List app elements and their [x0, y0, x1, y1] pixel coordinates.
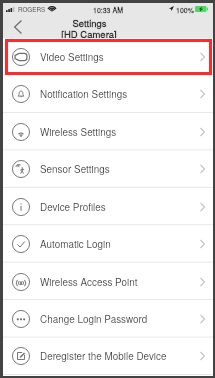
button[interactable]: Change Login Password — [3, 300, 213, 337]
button[interactable]: Automatic Login — [3, 225, 213, 262]
staticText: [HD Camera] — [61, 27, 117, 41]
staticText: Deregister the Mobile Device — [40, 349, 167, 363]
staticText: Device Profiles — [40, 200, 106, 214]
staticText: Automatic Login — [40, 237, 111, 251]
staticText: Wireless Settings — [40, 125, 117, 139]
staticText: 10:33 AM — [93, 5, 123, 15]
button[interactable]: Wireless Settings — [3, 113, 213, 150]
button[interactable]: Wireless Access Point — [3, 263, 213, 300]
staticText: Sensor Settings — [40, 162, 110, 176]
button[interactable]: Notification Settings — [3, 75, 213, 112]
button[interactable]: Video Settings — [3, 38, 213, 75]
button[interactable]: Deregister the Mobile Device — [3, 337, 213, 374]
button[interactable]: Device Profiles — [3, 188, 213, 225]
staticText: ROGERS — [18, 5, 46, 14]
button[interactable]: Sensor Settings — [3, 150, 213, 187]
staticText: Video Settings — [40, 50, 104, 64]
staticText: Change Login Password — [40, 312, 148, 326]
staticText: Notification Settings — [40, 87, 128, 101]
staticText: Wireless Access Point — [40, 275, 138, 289]
button[interactable]: Back — [3, 14, 29, 38]
staticText: 100% — [176, 5, 194, 15]
staticText: Settings — [72, 16, 107, 30]
